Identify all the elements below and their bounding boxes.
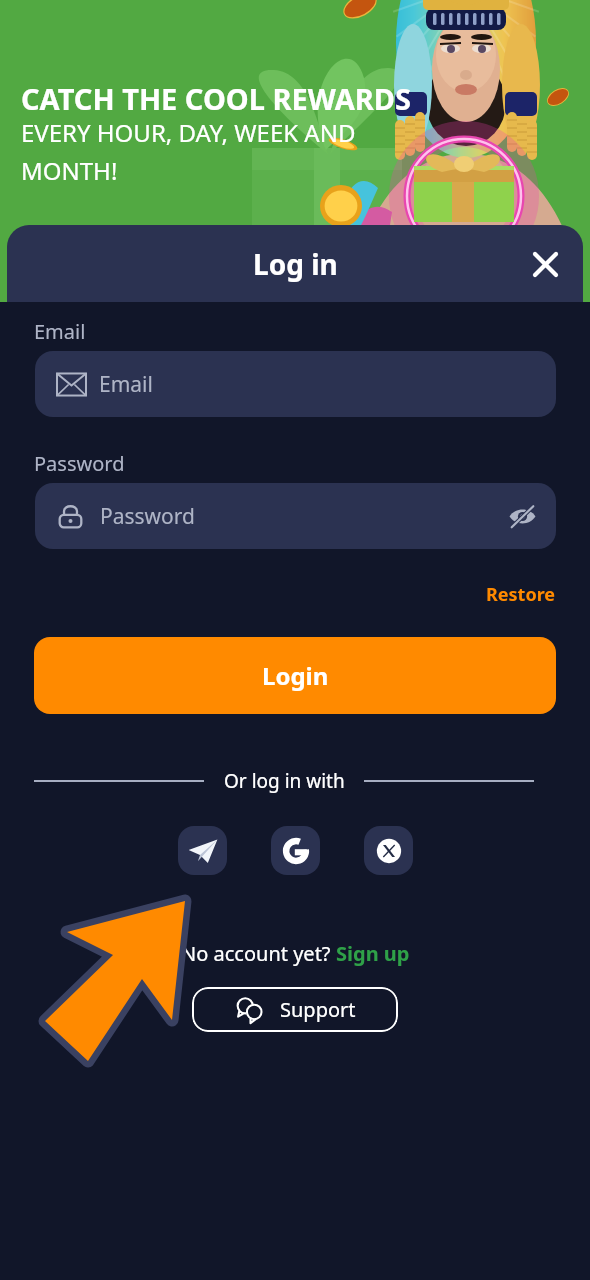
staticText: Sign up: [336, 940, 410, 967]
button[interactable]: Support: [192, 987, 398, 1032]
staticText: EVERY HOUR, DAY, WEEK AND MONTH!: [21, 116, 356, 187]
staticText: Password: [100, 502, 195, 531]
staticText: Login: [262, 659, 329, 692]
staticText: Password: [34, 450, 125, 477]
staticText: Email: [99, 370, 153, 399]
button[interactable]: Password: [35, 483, 556, 549]
staticText: Or log in with: [224, 768, 345, 794]
staticText: Support: [280, 996, 356, 1023]
staticText: Restore: [486, 582, 556, 607]
button[interactable]: Login: [34, 637, 556, 714]
button[interactable]: Email: [35, 351, 556, 417]
button[interactable]: Close: [521, 240, 569, 288]
staticText: Email: [34, 318, 86, 345]
button[interactable]: Google: [271, 826, 320, 875]
button[interactable]: Restore: [486, 582, 556, 607]
staticText: No account yet?: [181, 940, 336, 967]
button[interactable]: Sign up: [336, 940, 410, 967]
button[interactable]: X: [364, 826, 413, 875]
staticText: CATCH THE COOL REWARDS: [21, 79, 411, 118]
staticText: Log in: [253, 245, 338, 283]
button[interactable]: Telegram: [178, 826, 227, 875]
